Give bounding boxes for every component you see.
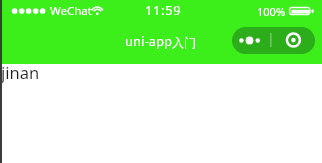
- staticText: 11:59: [145, 1, 182, 19]
- staticText: jinan: [1, 61, 40, 83]
- staticText: 入门: [172, 35, 196, 50]
- button[interactable]: Close mini program: [271, 27, 315, 54]
- staticText: uni-app: [125, 32, 172, 50]
- button[interactable]: More options: [232, 27, 271, 54]
- staticText: WeChat: [50, 3, 92, 19]
- staticText: 100%: [257, 4, 286, 19]
